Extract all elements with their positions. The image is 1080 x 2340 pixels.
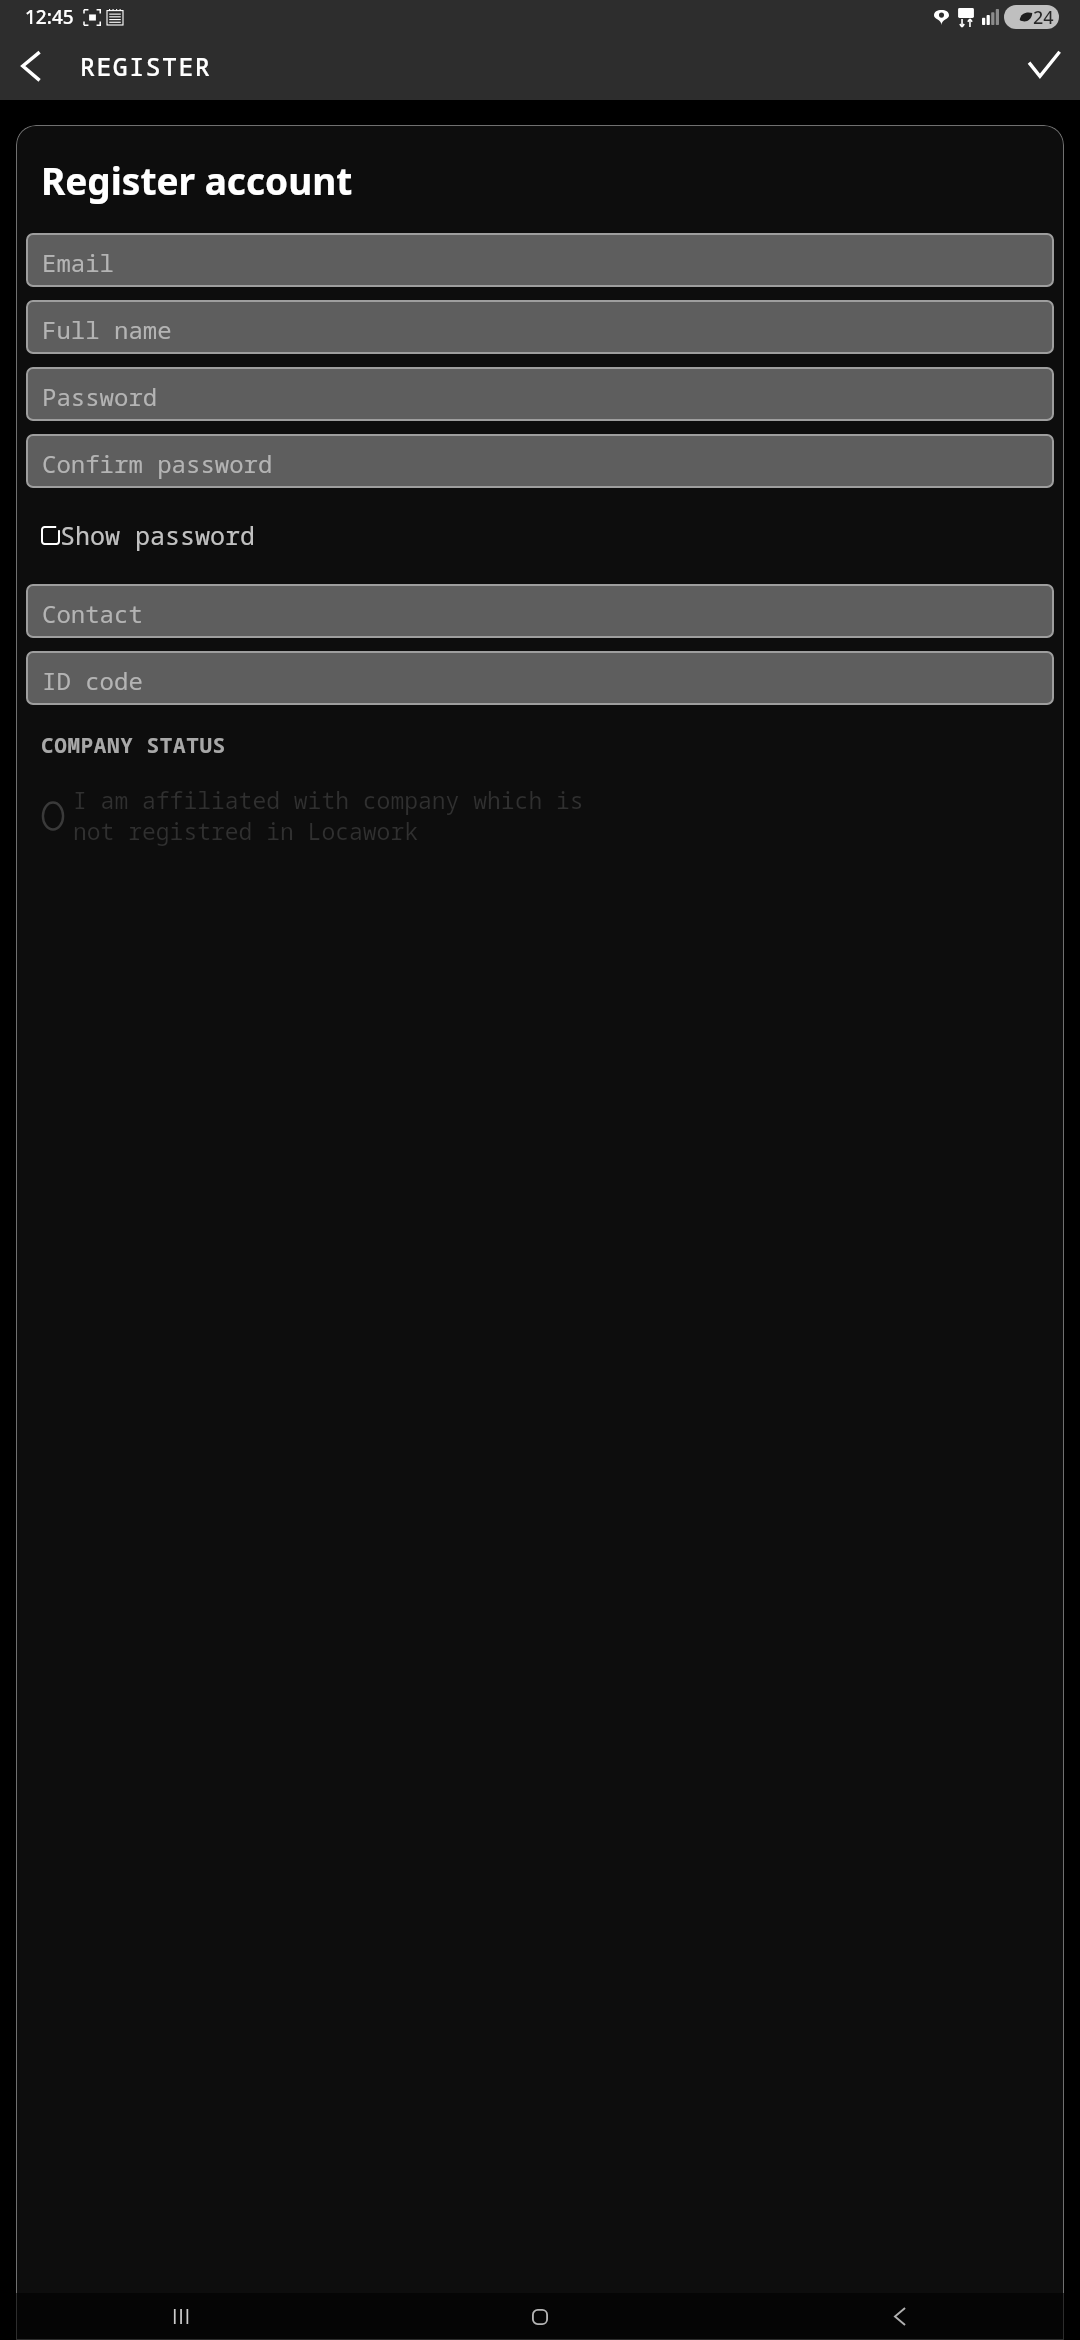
button[interactable]: Recent apps bbox=[0, 2293, 360, 2340]
button[interactable]: Contact bbox=[26, 584, 1054, 638]
staticText: Email bbox=[42, 246, 114, 279]
staticText: COMPANY STATUS bbox=[41, 731, 226, 760]
button[interactable]: Back bbox=[0, 33, 66, 99]
staticText: 24 bbox=[1033, 5, 1054, 29]
button[interactable]: Back bbox=[720, 2293, 1080, 2340]
button[interactable]: I am affiliated with company which is no… bbox=[41, 784, 584, 847]
button[interactable]: Confirm password bbox=[26, 434, 1054, 488]
button[interactable]: Password bbox=[26, 367, 1054, 421]
staticText: Confirm password bbox=[42, 447, 273, 480]
button[interactable]: Confirm bbox=[1008, 32, 1080, 100]
staticText: ID code bbox=[42, 664, 143, 697]
staticText: I am affiliated with company which is no… bbox=[73, 784, 584, 847]
button[interactable]: ID code bbox=[26, 651, 1054, 705]
staticText: Password bbox=[42, 380, 158, 413]
button[interactable]: Full name bbox=[26, 300, 1054, 354]
staticText: 12:45 bbox=[25, 4, 74, 30]
button[interactable]: Email bbox=[26, 233, 1054, 287]
staticText: Full name bbox=[42, 313, 172, 346]
staticText: Contact bbox=[42, 597, 143, 630]
staticText: REGISTER bbox=[80, 49, 212, 83]
button[interactable]: Home bbox=[360, 2293, 720, 2340]
staticText: Register account bbox=[41, 155, 353, 205]
staticText: Show password bbox=[60, 518, 256, 552]
button[interactable]: Show password bbox=[41, 518, 256, 552]
